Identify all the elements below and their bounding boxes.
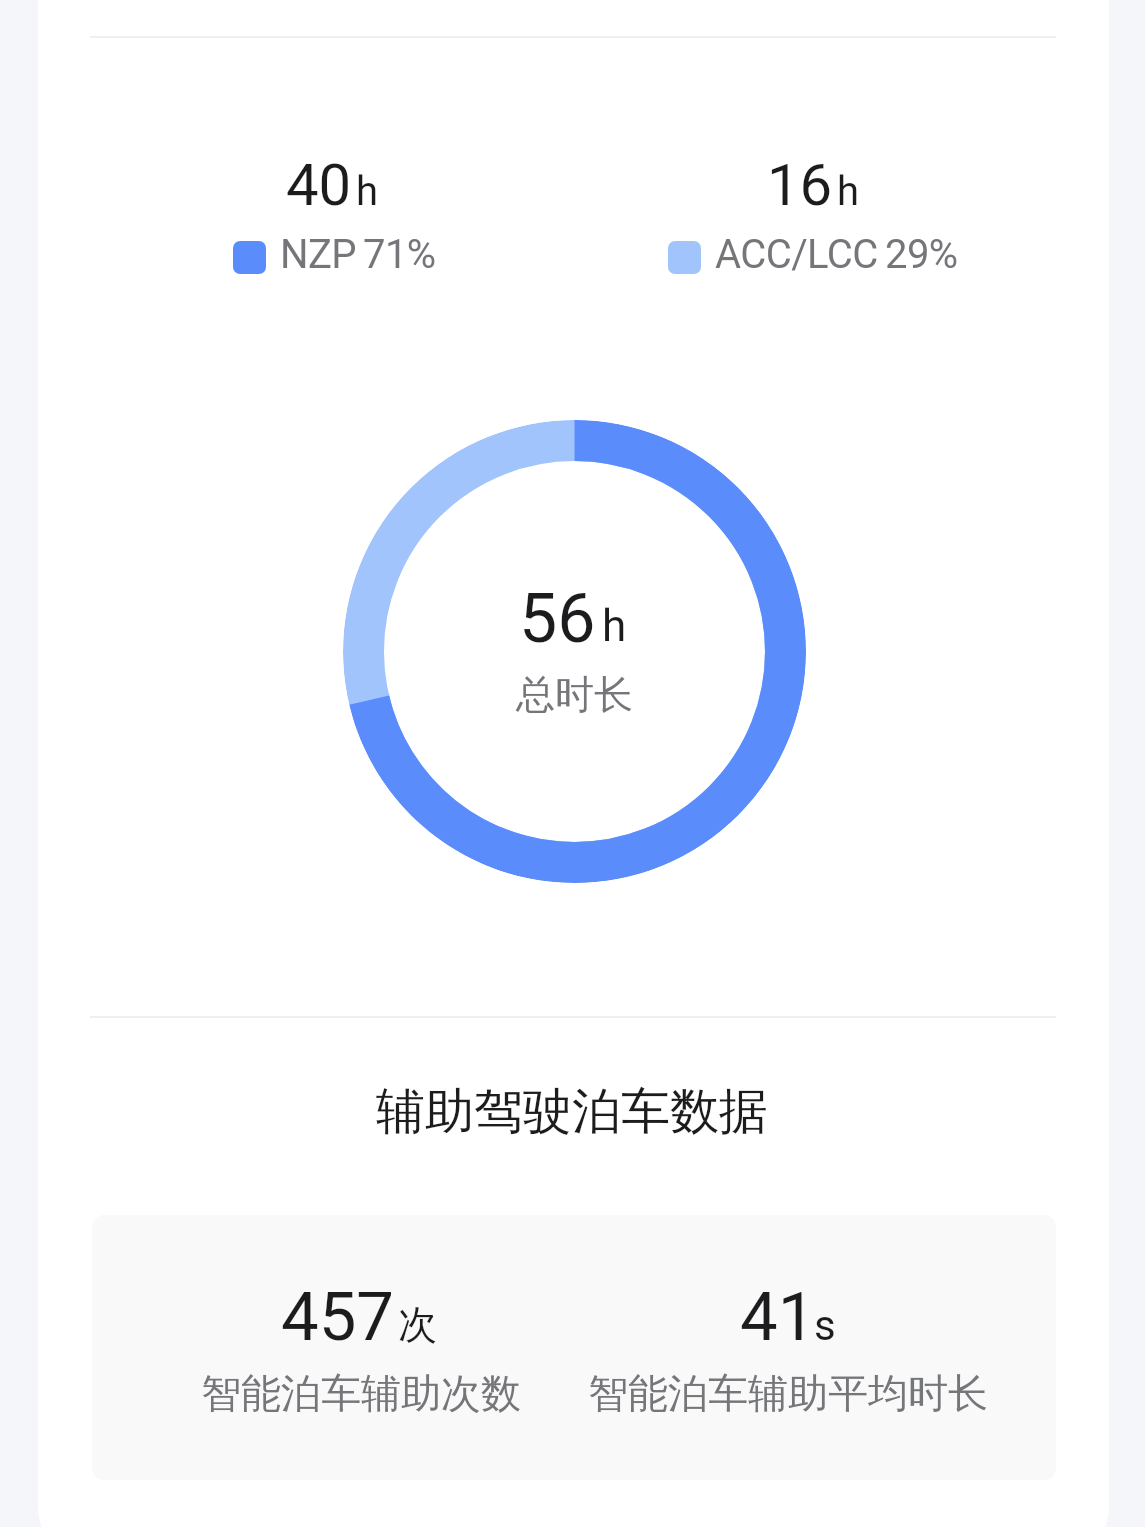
staticText: 29%	[885, 231, 958, 278]
staticText: 总时长	[516, 670, 633, 719]
button[interactable]: 智能泊车辅助平均时长	[563, 1248, 1013, 1448]
staticText: 次	[398, 1300, 437, 1349]
button[interactable]: ACC/LCC	[668, 231, 958, 278]
staticText: 辅助驾驶泊车数据	[376, 1081, 768, 1143]
button[interactable]: NZP	[233, 231, 436, 278]
staticText: 41	[740, 1278, 816, 1357]
staticText: h	[356, 168, 379, 215]
staticText: ACC/LCC	[715, 231, 878, 278]
staticText: s	[814, 1301, 836, 1350]
button[interactable]: Driving time breakdown chart	[343, 420, 806, 883]
staticText: 457	[281, 1278, 394, 1357]
staticText: 56	[519, 579, 596, 659]
staticText: h	[837, 168, 860, 215]
staticText: h	[602, 600, 627, 652]
button[interactable]	[92, 1215, 1056, 1480]
staticText: 智能泊车辅助次数	[201, 1368, 521, 1418]
staticText: NZP	[280, 231, 356, 278]
staticText: 16	[767, 151, 833, 219]
staticText: 40	[286, 151, 352, 219]
button[interactable]: 智能泊车辅助次数	[136, 1248, 586, 1448]
staticText: 71%	[363, 231, 436, 278]
staticText: 智能泊车辅助平均时长	[588, 1368, 988, 1418]
